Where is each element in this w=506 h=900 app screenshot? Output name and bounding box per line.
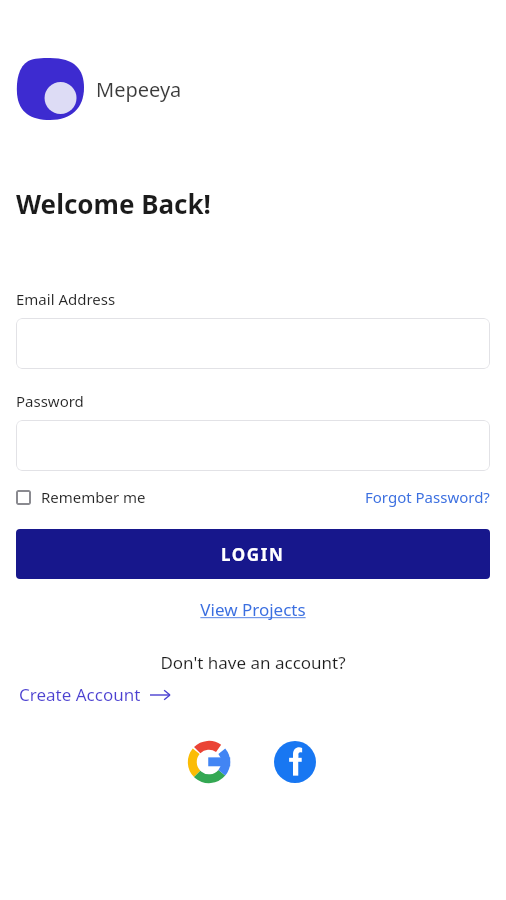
staticText: Don't have an account? — [160, 651, 346, 674]
staticText: Mepeeya — [96, 76, 182, 103]
button[interactable]: Create Account — [19, 683, 170, 706]
button[interactable] — [16, 318, 490, 369]
staticText: Welcome Back! — [16, 186, 211, 221]
button[interactable]: View Projects — [200, 598, 306, 621]
button[interactable]: Sign in with Facebook — [273, 740, 317, 784]
button[interactable]: Sign in with Google — [189, 742, 229, 782]
staticText: LOGIN — [221, 543, 285, 566]
staticText: Email Address — [16, 289, 116, 309]
staticText: Remember me — [41, 487, 146, 507]
button[interactable]: LOGIN — [16, 529, 490, 579]
staticText: Password — [16, 391, 84, 411]
button[interactable]: Remember me — [16, 487, 146, 507]
button[interactable] — [16, 420, 490, 471]
button[interactable]: Forgot Password? — [365, 487, 490, 507]
staticText: Create Account — [19, 683, 141, 706]
